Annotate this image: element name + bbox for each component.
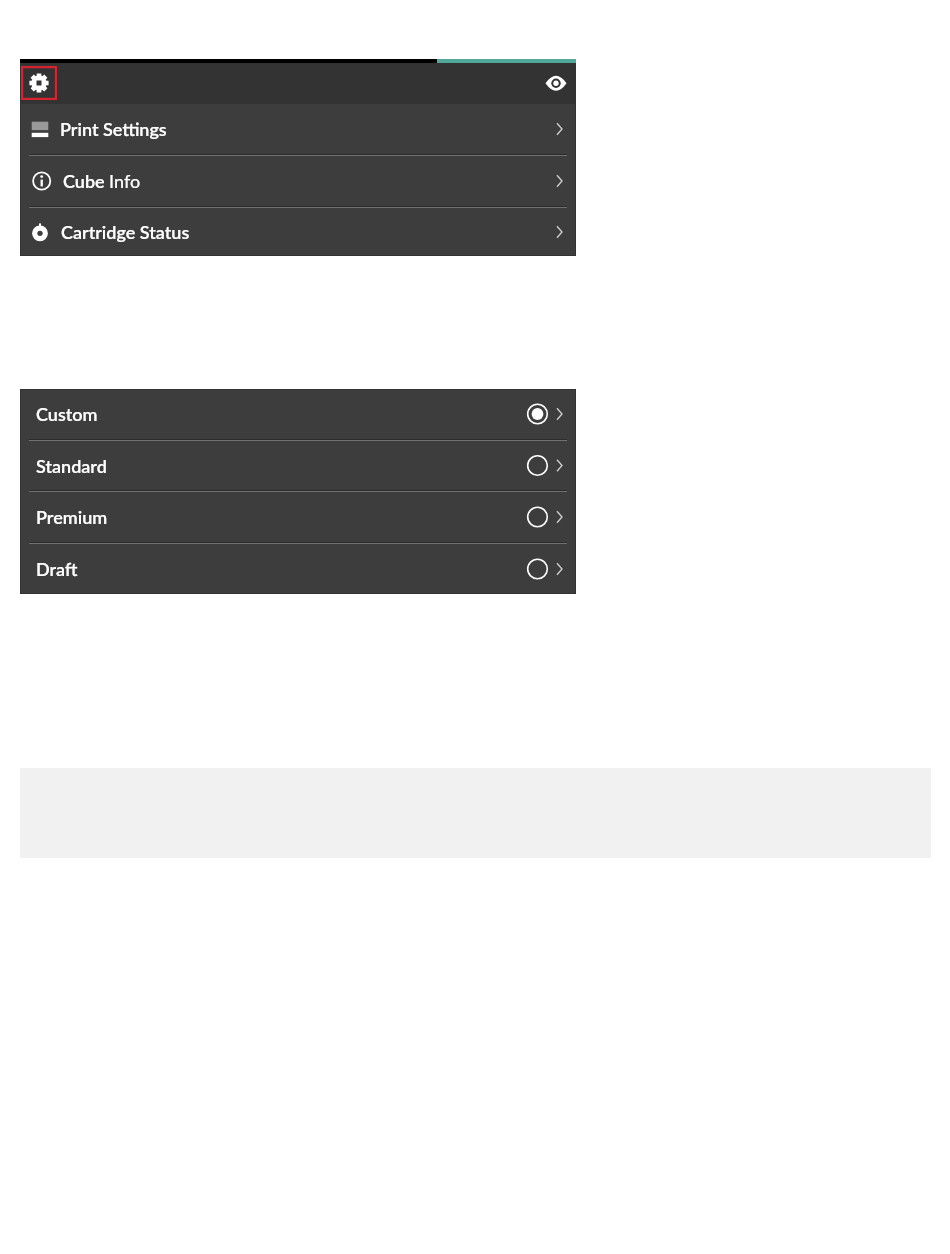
staticText: Premium: [36, 506, 108, 528]
button[interactable]: Open: [544, 208, 576, 256]
staticText: Print Settings: [60, 118, 167, 140]
staticText: Custom: [36, 403, 98, 425]
button[interactable]: Standard: [20, 441, 576, 490]
button[interactable]: Premium: [20, 492, 576, 542]
staticText: Draft: [36, 558, 78, 580]
staticText: Cartridge Status: [61, 221, 190, 243]
staticText: Standard: [36, 455, 107, 477]
button[interactable]: Preview: [540, 68, 572, 100]
button[interactable]: Draft: [20, 544, 576, 594]
staticText: Cube Info: [63, 170, 141, 192]
button[interactable]: Print Settings: [20, 104, 576, 154]
button[interactable]: Open: [544, 156, 576, 206]
button[interactable]: Custom: [20, 389, 576, 439]
button[interactable]: Cartridge Status: [20, 208, 576, 256]
button[interactable]: Settings: [21, 66, 57, 100]
button[interactable]: Cube Info: [20, 156, 576, 206]
button[interactable]: Open: [544, 104, 576, 154]
